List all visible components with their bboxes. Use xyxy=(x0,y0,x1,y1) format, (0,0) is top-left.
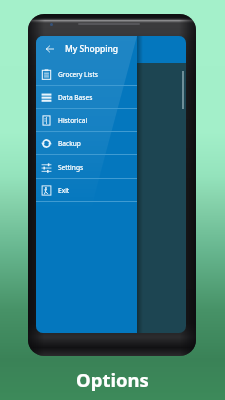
button[interactable]: Exit xyxy=(36,179,137,202)
button[interactable]: Historical xyxy=(36,109,137,132)
button[interactable]: Settings xyxy=(36,155,137,179)
button[interactable]: Backup xyxy=(36,132,137,155)
staticText: Vibrate on xyxy=(40,90,70,98)
button[interactable]: Back xyxy=(43,42,56,55)
staticText: Options xyxy=(0,367,225,392)
staticText: Data Bases xyxy=(58,93,93,102)
button[interactable]: Data Bases xyxy=(36,86,137,109)
staticText: Backup to Dropbox xyxy=(40,192,95,200)
button[interactable]: Grocery Lists xyxy=(36,63,137,86)
staticText: Historical xyxy=(58,116,88,125)
staticText: My Shopping xyxy=(65,43,119,55)
staticText: Exit xyxy=(58,186,70,195)
staticText: Settings xyxy=(58,163,84,172)
staticText: Backup xyxy=(58,139,81,148)
staticText: Options xyxy=(40,134,63,142)
staticText: Grocery Lists xyxy=(58,70,98,79)
